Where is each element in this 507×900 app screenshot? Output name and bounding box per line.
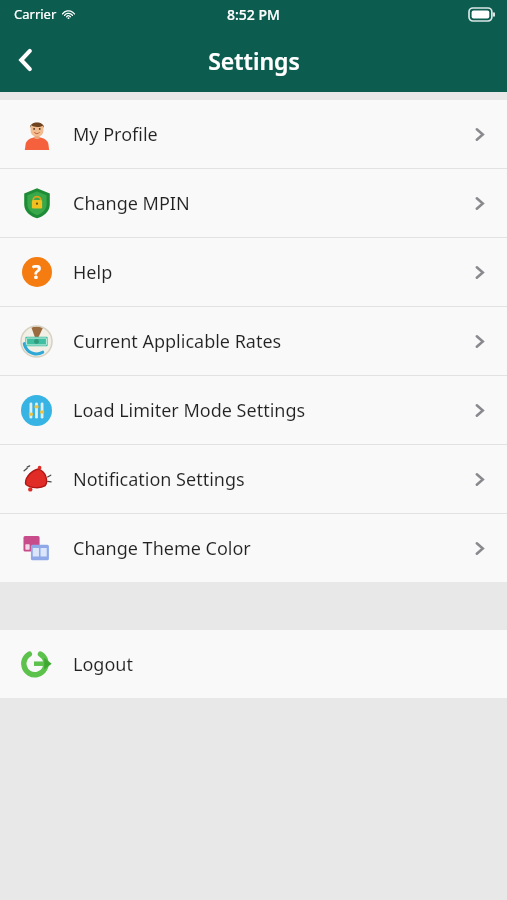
button[interactable]: Back <box>0 34 52 86</box>
button[interactable]: Current Applicable Rates <box>0 307 507 375</box>
staticText: Load Limiter Mode Settings <box>73 398 452 423</box>
staticText: Settings <box>208 45 300 76</box>
button[interactable]: Load Limiter Mode Settings <box>0 376 507 444</box>
staticText: My Profile <box>73 122 452 147</box>
button[interactable]: Notification Settings <box>0 445 507 513</box>
staticText: Change Theme Color <box>73 536 452 561</box>
staticText: Carrier <box>14 5 57 23</box>
button[interactable]: ? <box>0 238 507 306</box>
staticText: Notification Settings <box>73 467 452 492</box>
button[interactable]: Change Theme Color <box>0 514 507 582</box>
staticText: Logout <box>73 652 452 677</box>
button[interactable]: Change MPIN <box>0 169 507 237</box>
staticText: ? <box>32 259 42 285</box>
staticText: Help <box>73 260 452 285</box>
button[interactable]: My Profile <box>0 100 507 168</box>
button[interactable]: Logout <box>0 630 507 698</box>
staticText: Change MPIN <box>73 191 452 216</box>
staticText: Current Applicable Rates <box>73 329 452 354</box>
staticText: 8:52 PM <box>227 5 280 24</box>
